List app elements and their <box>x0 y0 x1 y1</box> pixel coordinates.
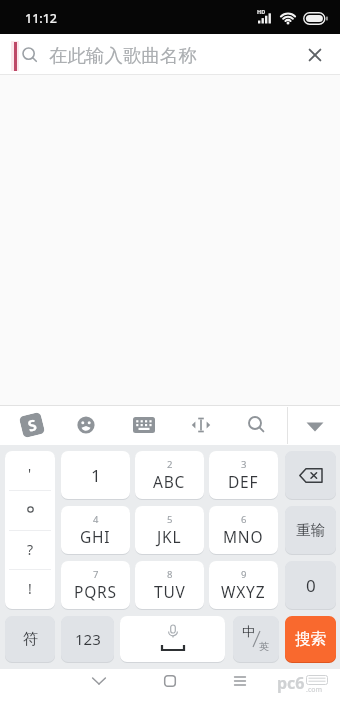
staticText: 搜索 <box>295 629 326 649</box>
staticText: 中 <box>242 623 255 639</box>
staticText: PQRS <box>74 581 117 602</box>
button[interactable]: 5 <box>135 506 204 554</box>
staticText: DEF <box>228 471 259 492</box>
staticText: 在此输入歌曲名称 <box>49 44 197 67</box>
button[interactable]: 123 <box>61 616 114 662</box>
staticText: 英 <box>259 640 269 653</box>
staticText: 重输 <box>296 521 325 539</box>
staticText: 6 <box>241 513 247 526</box>
button[interactable] <box>0 34 340 74</box>
button[interactable]: 7 <box>61 561 130 609</box>
staticText: 2 <box>167 458 173 471</box>
button[interactable]: ? <box>5 530 55 569</box>
button[interactable]: 搜索 <box>285 616 336 662</box>
staticText: 0 <box>306 574 316 597</box>
button[interactable] <box>309 49 321 61</box>
button[interactable]: 0 <box>285 561 336 609</box>
button[interactable] <box>234 676 246 686</box>
staticText: pc6 <box>277 672 305 694</box>
staticText: ? <box>27 540 34 559</box>
button[interactable]: 重输 <box>285 506 336 554</box>
button[interactable] <box>120 616 225 662</box>
button[interactable]: 符 <box>5 616 55 662</box>
button[interactable]: 8 <box>135 561 204 609</box>
button[interactable]: S <box>19 412 45 438</box>
button[interactable] <box>191 417 211 433</box>
button[interactable] <box>133 417 155 433</box>
staticText: ! <box>28 579 32 598</box>
button[interactable] <box>285 451 336 499</box>
staticText: 4 <box>93 513 99 526</box>
staticText: GHI <box>80 526 111 547</box>
staticText: ' <box>28 464 32 483</box>
staticText: TUV <box>154 581 186 602</box>
staticText: 5 <box>167 513 173 526</box>
staticText: JKL <box>157 526 182 547</box>
button[interactable] <box>248 416 265 433</box>
button[interactable]: 4 <box>61 506 130 554</box>
staticText: 7 <box>93 568 99 581</box>
staticText: ABC <box>153 471 186 492</box>
staticText: S <box>26 414 39 436</box>
staticText: 11:12 <box>25 10 58 27</box>
staticText: 1 <box>91 464 101 487</box>
button[interactable]: 9 <box>209 561 278 609</box>
staticText: 123 <box>75 629 101 649</box>
staticText: 3 <box>241 458 247 471</box>
staticText: 9 <box>241 568 247 581</box>
button[interactable] <box>5 451 55 609</box>
button[interactable] <box>5 490 55 529</box>
staticText: 符 <box>23 630 38 649</box>
staticText: HD <box>257 8 266 15</box>
button[interactable]: 3 <box>209 451 278 499</box>
button[interactable] <box>92 677 106 685</box>
button[interactable]: ! <box>5 569 55 608</box>
staticText: WXYZ <box>221 581 266 602</box>
button[interactable]: 2 <box>135 451 204 499</box>
button[interactable] <box>306 422 324 432</box>
button[interactable]: 6 <box>209 506 278 554</box>
button[interactable]: 1 <box>61 451 130 499</box>
button[interactable]: 中 <box>233 616 279 662</box>
staticText: .com <box>306 685 323 695</box>
staticText: 8 <box>167 568 173 581</box>
button[interactable] <box>77 416 95 434</box>
button[interactable] <box>164 675 176 687</box>
staticText: MNO <box>223 526 264 547</box>
button[interactable]: ' <box>5 451 55 490</box>
